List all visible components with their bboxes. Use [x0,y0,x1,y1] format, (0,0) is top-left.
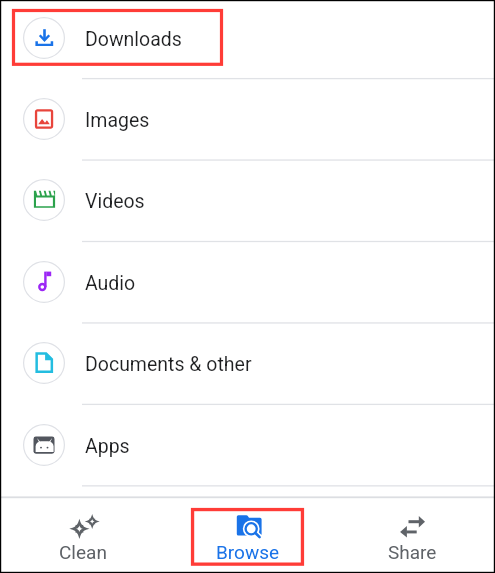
button[interactable]: Videos [0,159,495,240]
staticText: Apps [85,435,130,458]
staticText: Share [388,541,437,563]
button[interactable]: Audio [0,241,495,322]
staticText: Documents & other [85,353,252,376]
button[interactable]: Documents & other [0,322,495,403]
staticText: Clean [59,541,107,563]
button[interactable]: Browse [165,499,330,573]
staticText: Audio [85,272,136,295]
button[interactable]: Downloads [0,0,495,78]
button[interactable]: Clean [0,499,165,573]
button[interactable]: Apps [0,404,495,485]
button[interactable]: Images [0,78,495,159]
staticText: Downloads [85,28,182,51]
staticText: Browse [216,541,280,563]
staticText: Images [85,109,150,132]
staticText: Videos [85,190,145,213]
button[interactable]: Share [330,499,495,573]
